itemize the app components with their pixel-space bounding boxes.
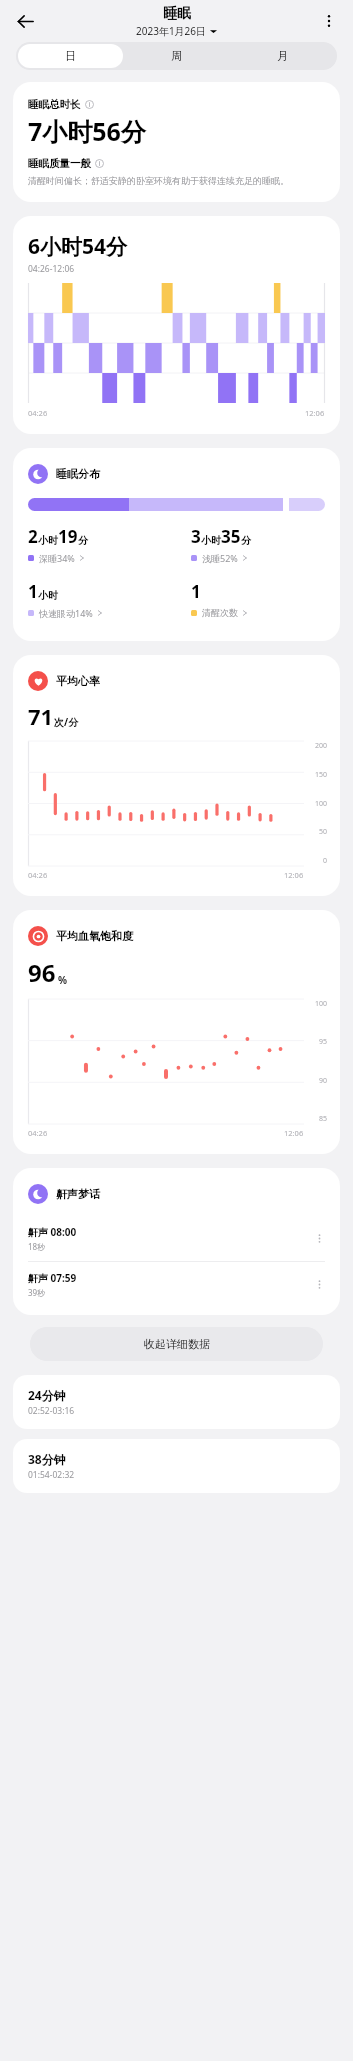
staticText: % xyxy=(58,973,68,987)
staticText: 快速眼动14% xyxy=(39,607,93,619)
staticText: 睡眠分布 xyxy=(56,467,100,481)
staticText: 月 xyxy=(277,49,288,63)
staticText: 12:06 xyxy=(305,408,325,418)
staticText: 小时 xyxy=(38,534,58,547)
staticText: 平均心率 xyxy=(56,674,100,688)
staticText: 小时 xyxy=(38,589,58,602)
staticText: 分 xyxy=(241,534,251,547)
staticText: 鼾声 08:00 xyxy=(28,1225,77,1239)
staticText: 收起详细数据 xyxy=(144,1337,210,1351)
staticText: 12:06 xyxy=(284,870,304,880)
staticText: 04:26 xyxy=(28,408,48,418)
button[interactable]: 38分钟 xyxy=(13,1439,340,1493)
button[interactable]: 1 xyxy=(28,580,176,619)
staticText: 鼾声梦话 xyxy=(56,1187,100,1201)
staticText: 睡眠 xyxy=(163,5,191,23)
staticText: 鼾声 07:59 xyxy=(28,1271,77,1285)
staticText: 50 xyxy=(319,827,328,837)
button[interactable]: 月 xyxy=(229,44,335,68)
staticText: 24分钟 xyxy=(28,1387,66,1403)
button[interactable]: 3 xyxy=(191,525,340,564)
staticText: 100 xyxy=(315,999,328,1009)
staticText: 3 xyxy=(191,525,201,548)
staticText: 浅睡52% xyxy=(202,552,238,564)
button[interactable]: 1 xyxy=(191,580,340,618)
button[interactable]: 日 xyxy=(18,44,123,68)
staticText: 96 xyxy=(28,956,56,989)
staticText: 周 xyxy=(171,49,182,63)
staticText: 02:52-03:16 xyxy=(28,1405,75,1417)
button[interactable]: 收起详细数据 xyxy=(30,1327,323,1361)
staticText: 1 xyxy=(191,580,201,603)
button[interactable]: 2023年1月26日 xyxy=(136,24,217,38)
staticText: 04:26-12:06 xyxy=(28,263,75,275)
staticText: 150 xyxy=(315,770,328,780)
staticText: 35 xyxy=(221,525,241,548)
button[interactable]: 周 xyxy=(123,44,229,68)
staticText: 04:26 xyxy=(28,870,48,880)
staticText: 深睡34% xyxy=(39,552,75,564)
staticText: 睡眠总时长 xyxy=(28,98,81,111)
staticText: 19 xyxy=(58,525,78,548)
staticText: 100 xyxy=(315,799,328,809)
staticText: 95 xyxy=(319,1037,328,1047)
button[interactable]: 鼾声 08:00 xyxy=(13,1216,340,1261)
button[interactable]: 24分钟 xyxy=(13,1375,340,1429)
button[interactable]: Back xyxy=(8,4,42,38)
staticText: 0 xyxy=(323,856,328,866)
staticText: 睡眠质量一般 xyxy=(28,157,91,170)
staticText: 清醒次数 xyxy=(202,607,238,618)
staticText: 6小时54分 xyxy=(28,232,128,261)
staticText: 12:06 xyxy=(284,1128,304,1138)
staticText: 18秒 xyxy=(28,1241,46,1252)
staticText: 日 xyxy=(65,49,76,63)
staticText: 分 xyxy=(78,534,88,547)
staticText: 1 xyxy=(28,580,38,603)
button[interactable]: 2 xyxy=(28,525,176,564)
staticText: 200 xyxy=(315,741,328,751)
staticText: 39秒 xyxy=(28,1287,46,1298)
staticText: 01:54-02:32 xyxy=(28,1469,75,1481)
staticText: 2 xyxy=(28,525,38,548)
staticText: 85 xyxy=(319,1114,328,1124)
staticText: 2023年1月26日 xyxy=(136,24,207,38)
button[interactable]: 鼾声 07:59 xyxy=(13,1262,340,1307)
staticText: 38分钟 xyxy=(28,1451,66,1467)
button[interactable]: More options xyxy=(313,5,345,37)
staticText: 次/分 xyxy=(54,715,79,729)
staticText: 71 xyxy=(28,701,54,731)
staticText: 04:26 xyxy=(28,1128,48,1138)
staticText: 平均血氧饱和度 xyxy=(56,929,133,943)
staticText: 小时 xyxy=(201,534,221,547)
staticText: 清醒时间偏长；舒适安静的卧室环境有助于获得连续充足的睡眠。 xyxy=(28,175,289,186)
staticText: 7小时56分 xyxy=(28,114,146,148)
staticText: 90 xyxy=(319,1076,328,1086)
